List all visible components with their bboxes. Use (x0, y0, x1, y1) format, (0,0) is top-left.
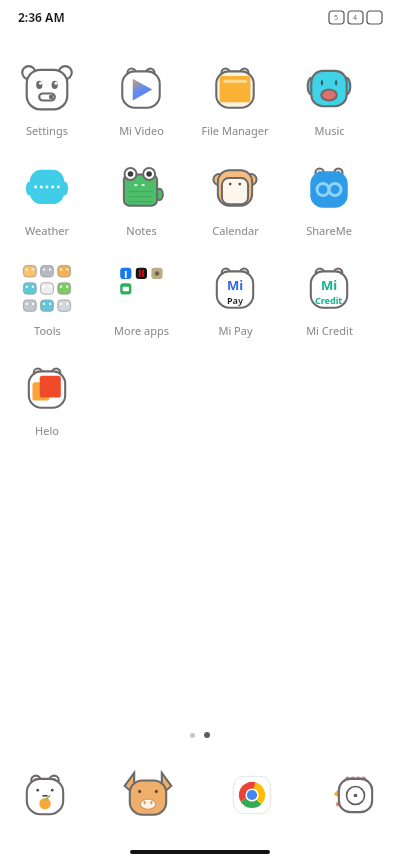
button[interactable]: Calendar (188, 156, 282, 238)
button[interactable]: Notes (94, 156, 188, 238)
staticText: Credit (315, 294, 343, 306)
staticText: 4 (353, 13, 358, 23)
staticText: Mi Video (119, 123, 164, 138)
staticText: Calendar (212, 223, 259, 238)
button[interactable]: Chrome (221, 764, 283, 826)
staticText: Mi (227, 276, 244, 294)
staticText: Tools (34, 323, 61, 338)
staticText: Mi (321, 276, 338, 294)
staticText: ShareMe (306, 223, 352, 238)
button[interactable]: Tools (0, 256, 94, 338)
button[interactable]: More apps (94, 256, 188, 338)
button[interactable]: Phone (14, 764, 76, 826)
staticText: 2:36 AM (18, 9, 65, 25)
button[interactable]: ShareMe (282, 156, 376, 238)
staticText: Mi Pay (218, 323, 253, 338)
button[interactable]: Camera (324, 764, 386, 826)
button[interactable]: Helo (0, 356, 94, 438)
button[interactable]: Mi (282, 256, 376, 338)
staticText: Music (314, 123, 345, 138)
staticText: Helo (35, 423, 59, 438)
button[interactable]: Weather (0, 156, 94, 238)
staticText: Pay (227, 294, 244, 306)
button[interactable]: Settings (0, 56, 94, 138)
button[interactable]: Mi Video (94, 56, 188, 138)
button[interactable]: Music (282, 56, 376, 138)
staticText: Weather (25, 223, 69, 238)
staticText: Mi Credit (306, 323, 353, 338)
staticText: Notes (126, 223, 157, 238)
button[interactable]: Messages (117, 764, 179, 826)
staticText: File Manager (201, 123, 269, 138)
staticText: 5 (334, 13, 339, 23)
staticText: Settings (26, 123, 68, 138)
staticText: More apps (114, 323, 169, 338)
button[interactable]: File Manager (188, 56, 282, 138)
button[interactable]: Mi (188, 256, 282, 338)
